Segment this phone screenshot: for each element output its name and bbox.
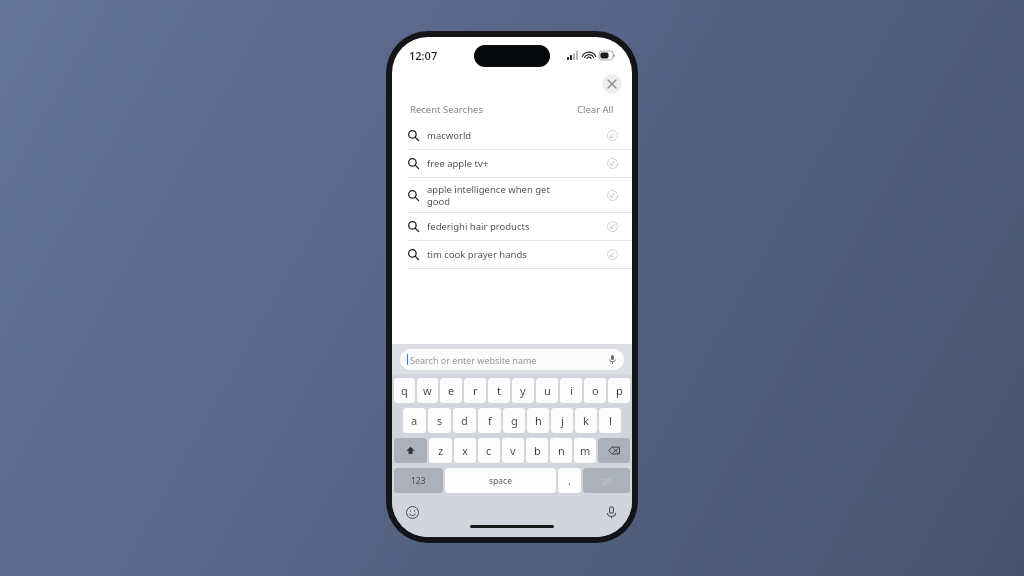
button[interactable]: Clear All: [575, 101, 616, 118]
button[interactable]: apple intelligence when get good: [392, 178, 632, 212]
staticText: s: [437, 413, 443, 428]
button[interactable]: s: [428, 408, 451, 433]
other: Fill search: [607, 190, 618, 201]
staticText: macworld: [427, 129, 472, 142]
button[interactable]: a: [403, 408, 426, 433]
button[interactable]: l: [599, 408, 621, 433]
staticText: a: [411, 413, 418, 428]
staticText: q: [401, 383, 408, 398]
staticText: d: [461, 413, 468, 428]
button[interactable]: r: [464, 378, 486, 403]
staticText: .: [568, 473, 571, 488]
staticText: Clear All: [577, 103, 614, 116]
button[interactable]: y: [512, 378, 534, 403]
staticText: w: [423, 383, 432, 398]
button[interactable]: macworld: [392, 122, 632, 149]
staticText: n: [558, 443, 565, 458]
button[interactable]: h: [527, 408, 549, 433]
button[interactable]: o: [584, 378, 606, 403]
button[interactable]: q: [394, 378, 415, 403]
button[interactable]: go: [583, 468, 630, 493]
button[interactable]: c: [478, 438, 500, 463]
staticText: y: [520, 383, 526, 398]
staticText: j: [561, 413, 564, 428]
staticText: Recent Searches: [410, 103, 483, 116]
staticText: federighi hair products: [427, 220, 530, 233]
staticText: tim cook prayer hands: [427, 248, 527, 261]
button[interactable]: t: [488, 378, 510, 403]
button[interactable]: b: [526, 438, 548, 463]
button[interactable]: v: [502, 438, 524, 463]
button[interactable]: f: [478, 408, 501, 433]
staticText: space: [489, 475, 512, 487]
other: Fill search: [607, 249, 618, 260]
staticText: h: [535, 413, 542, 428]
staticText: free apple tv+: [427, 157, 489, 170]
staticText: x: [462, 443, 468, 458]
button[interactable]: Search or enter website name: [400, 349, 624, 370]
staticText: r: [473, 383, 478, 398]
staticText: u: [544, 383, 551, 398]
other: Fill search: [607, 221, 618, 232]
staticText: c: [486, 443, 492, 458]
button[interactable]: z: [429, 438, 452, 463]
button[interactable]: p: [608, 378, 630, 403]
staticText: g: [511, 413, 518, 428]
staticText: t: [497, 383, 501, 398]
button[interactable]: n: [550, 438, 572, 463]
staticText: 123: [411, 475, 426, 487]
button[interactable]: w: [417, 378, 438, 403]
staticText: e: [448, 383, 455, 398]
button[interactable]: i: [560, 378, 582, 403]
staticText: Search or enter website name: [410, 354, 537, 366]
staticText: m: [580, 443, 591, 458]
button[interactable]: Close: [602, 74, 622, 94]
button[interactable]: tim cook prayer hands: [392, 241, 632, 268]
button[interactable]: Dictate: [605, 506, 618, 519]
staticText: f: [488, 413, 492, 428]
button[interactable]: Backspace: [598, 438, 630, 463]
other: Fill search: [607, 130, 618, 141]
button[interactable]: federighi hair products: [392, 213, 632, 240]
staticText: o: [592, 383, 599, 398]
staticText: 12:07: [409, 48, 438, 63]
button[interactable]: .: [558, 468, 581, 493]
staticText: k: [583, 413, 589, 428]
button[interactable]: u: [536, 378, 558, 403]
button[interactable]: x: [454, 438, 476, 463]
other: Fill search: [607, 158, 618, 169]
staticText: v: [510, 443, 516, 458]
button[interactable]: free apple tv+: [392, 150, 632, 177]
staticText: b: [534, 443, 541, 458]
staticText: i: [570, 383, 573, 398]
button[interactable]: g: [503, 408, 525, 433]
staticText: l: [609, 413, 612, 428]
button[interactable]: space: [445, 468, 556, 493]
button[interactable]: m: [574, 438, 596, 463]
staticText: z: [438, 443, 444, 458]
staticText: go: [601, 475, 612, 487]
button[interactable]: e: [440, 378, 462, 403]
button[interactable]: d: [453, 408, 476, 433]
button[interactable]: Shift: [394, 438, 427, 463]
staticText: p: [616, 383, 623, 398]
button[interactable]: 123: [394, 468, 443, 493]
button[interactable]: j: [551, 408, 573, 433]
staticText: apple intelligence when get good: [427, 183, 550, 208]
button[interactable]: Emoji: [406, 506, 419, 519]
button[interactable]: k: [575, 408, 597, 433]
